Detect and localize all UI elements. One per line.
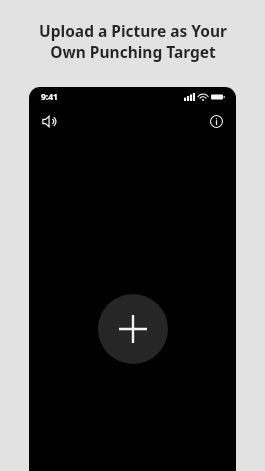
staticText: 9:41 <box>41 91 58 103</box>
button[interactable]: Add picture <box>98 294 168 364</box>
button[interactable]: Sound <box>37 109 61 133</box>
button[interactable]: Info <box>204 109 228 133</box>
staticText: Upload a Picture as Your Own Punching Ta… <box>39 20 227 63</box>
